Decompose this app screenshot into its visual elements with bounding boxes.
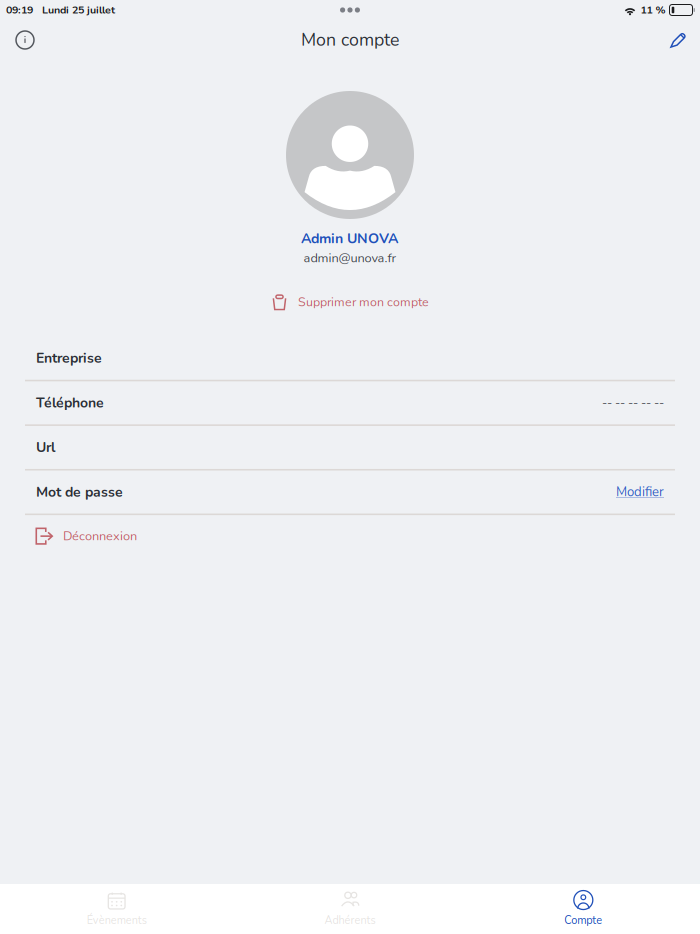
button[interactable]: Modifier le profil — [657, 20, 699, 60]
button[interactable]: Adhérents — [233, 884, 467, 934]
button[interactable]: Entreprise — [0, 337, 700, 381]
staticText: Évènements — [87, 913, 147, 928]
staticText: Mon compte — [301, 28, 399, 52]
staticText: admin@unova.fr — [303, 249, 396, 267]
button[interactable]: Mot de passe — [0, 470, 700, 515]
button[interactable]: Compte — [467, 884, 700, 934]
staticText: Déconnexion — [63, 527, 137, 545]
button[interactable]: Déconnexion — [0, 515, 700, 557]
staticText: Entreprise — [36, 349, 102, 368]
staticText: 11 % — [640, 3, 665, 17]
button[interactable]: Téléphone — [0, 381, 700, 426]
staticText: -- -- -- -- -- — [602, 394, 664, 411]
staticText: Mot de passe — [36, 482, 123, 502]
button[interactable]: Évènements — [0, 884, 233, 934]
staticText: Adhérents — [324, 913, 375, 928]
staticText: Modifier — [616, 483, 664, 501]
staticText: Admin UNOVA — [301, 229, 399, 248]
staticText: Compte — [564, 913, 602, 928]
button[interactable]: Url — [0, 426, 700, 470]
staticText: Url — [36, 438, 55, 457]
staticText: Supprimer mon compte — [298, 294, 429, 311]
button[interactable]: Supprimer mon compte — [271, 291, 429, 314]
staticText: Téléphone — [36, 393, 104, 412]
button[interactable]: Informations — [4, 20, 46, 60]
staticText: 09:19 — [6, 3, 33, 17]
staticText: Lundi 25 juillet — [42, 3, 115, 17]
